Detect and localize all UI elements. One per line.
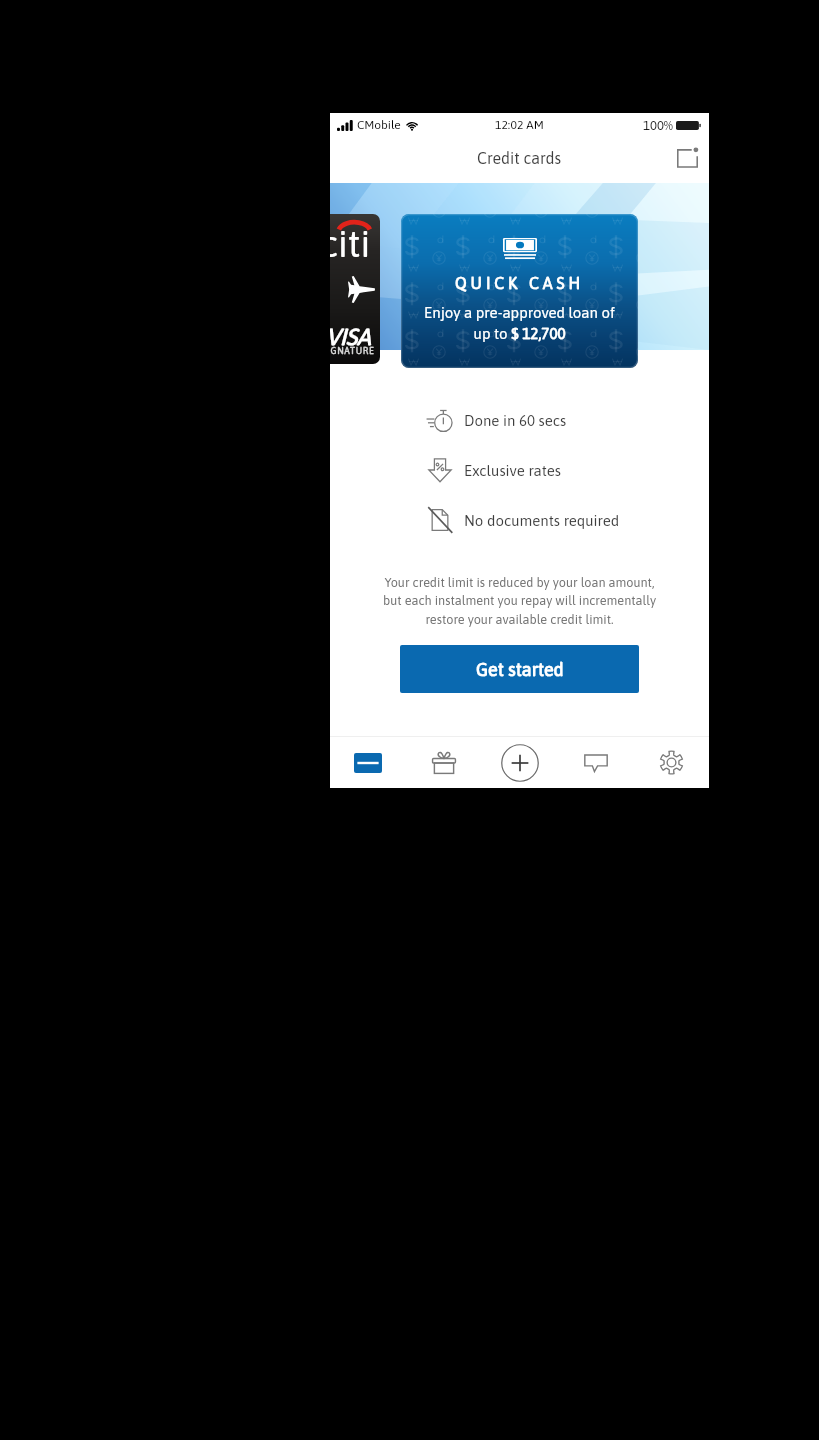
staticText: SIGNATURE (330, 346, 375, 356)
button[interactable]: Rewards (416, 737, 471, 788)
button[interactable]: Settings (644, 737, 699, 788)
button[interactable]: QUICK CASH (401, 214, 638, 368)
staticText: VISA (330, 324, 371, 350)
staticText: Get started (476, 659, 564, 680)
button[interactable]: Messages (568, 737, 623, 788)
staticText: No documents required (464, 512, 620, 529)
button[interactable]: Cards (340, 737, 395, 788)
staticText: QUICK CASH (455, 274, 585, 292)
button[interactable]: Get started (400, 645, 639, 693)
button[interactable]: Inbox (671, 141, 703, 173)
staticText: 100% (643, 118, 673, 133)
staticText: CMobile (357, 118, 401, 132)
staticText: Done in 60 secs (464, 412, 567, 429)
staticText: 12:02 AM (495, 118, 544, 132)
button[interactable]: Add (492, 737, 547, 788)
staticText: Your credit limit is reduced by your loa… (354, 575, 685, 627)
staticText: Exclusive rates (464, 462, 562, 479)
staticText: Enjoy a pre-approved loan of up to $ 12,… (424, 304, 615, 342)
button[interactable]: Citi Visa Signature card (330, 214, 380, 364)
staticText: citi (330, 222, 371, 264)
staticText: Credit cards (477, 149, 562, 167)
